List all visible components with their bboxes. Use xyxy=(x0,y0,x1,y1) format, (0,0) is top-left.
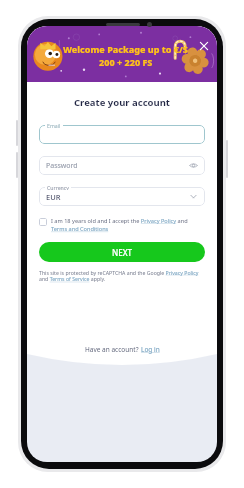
staticText: NEXT xyxy=(112,247,133,258)
staticText: 200 + 220 FS xyxy=(99,56,153,68)
staticText: Create your account xyxy=(74,96,170,109)
button[interactable]: Password xyxy=(39,156,205,175)
staticText: This site is protected by reCAPTCHA and … xyxy=(39,269,205,283)
staticText: Email xyxy=(47,122,61,128)
staticText: I am 18 years old and I accept the Priva… xyxy=(51,217,205,233)
button[interactable]: Close banner xyxy=(196,38,212,54)
button[interactable]: Email xyxy=(39,125,205,144)
button[interactable]: Have an account? xyxy=(27,345,217,354)
staticText: Password xyxy=(46,161,78,171)
button[interactable]: NEXT xyxy=(39,242,205,262)
button[interactable]: Currency xyxy=(39,187,205,206)
staticText: Log in xyxy=(141,345,160,354)
staticText: EUR xyxy=(46,192,61,202)
staticText: Welcome Package up to €/$ xyxy=(63,43,189,55)
staticText: Have an account? xyxy=(85,345,141,354)
button[interactable]: I am 18 years old and I accept the Priva… xyxy=(39,217,205,233)
staticText: Currency xyxy=(47,184,69,190)
